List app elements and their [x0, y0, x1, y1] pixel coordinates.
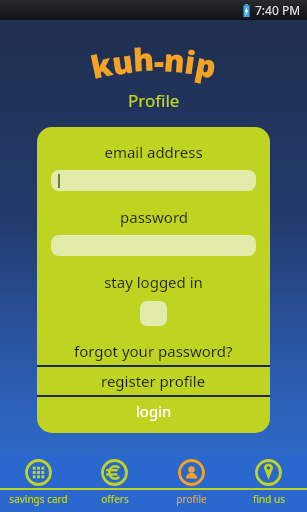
button[interactable] [51, 170, 256, 191]
staticText: email address [104, 142, 203, 162]
button[interactable]: login [37, 397, 270, 425]
staticText: i [182, 40, 199, 83]
button[interactable]: profile [153, 455, 230, 512]
button[interactable]: register profile [37, 367, 270, 395]
button[interactable]: savings card [0, 455, 76, 512]
staticText: u [109, 40, 136, 84]
staticText: login [136, 401, 172, 421]
button[interactable]: offers [76, 455, 153, 512]
button[interactable] [51, 235, 256, 256]
staticText: profile [176, 492, 207, 506]
staticText: 7:40 PM [255, 2, 301, 18]
staticText: stay logged in [104, 272, 203, 292]
button[interactable]: forgot your password? [37, 337, 270, 365]
staticText: - [154, 40, 164, 82]
staticText: p [192, 42, 220, 87]
staticText: forgot your password? [74, 341, 233, 361]
staticText: k [87, 42, 116, 88]
staticText: Profile [128, 89, 180, 112]
staticText: savings card [9, 492, 68, 506]
staticText: h [132, 37, 155, 80]
button[interactable]: find us [230, 455, 307, 512]
staticText: find us [253, 492, 285, 506]
staticText: offers [101, 492, 129, 506]
staticText: n [163, 38, 186, 82]
button[interactable]: Stay logged in [140, 301, 167, 326]
staticText: register profile [101, 371, 206, 391]
staticText: password [120, 207, 188, 227]
